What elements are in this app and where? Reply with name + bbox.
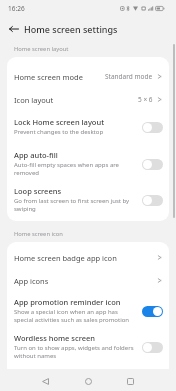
button[interactable]: Lock Home screen layout	[7, 111, 169, 144]
staticText: Auto-fill empty spaces when apps are rem…	[14, 161, 136, 177]
button[interactable]: Switch off	[142, 195, 163, 206]
staticText: Home screen layout	[14, 45, 176, 53]
button[interactable]: Icon layout	[7, 88, 169, 111]
button[interactable]: Switch off	[142, 342, 163, 353]
staticText: Prevent changes to the desktop	[14, 128, 104, 136]
staticText: Lock Home screen layout	[14, 117, 105, 127]
staticText: Home screen settings	[24, 23, 118, 35]
button[interactable]: Wordless home screen	[7, 327, 169, 366]
button[interactable]: Home screen badge app icon	[7, 246, 169, 269]
staticText: 16:26	[8, 4, 25, 13]
button[interactable]: Recent apps	[116, 372, 144, 390]
button[interactable]: App promotion reminder icon	[7, 292, 169, 327]
staticText: Icon layout	[14, 95, 54, 105]
staticText: 5 × 6	[138, 95, 153, 104]
staticText: Turn on to show apps, widgets and folder…	[14, 344, 136, 360]
staticText: Home screen icon	[14, 230, 176, 238]
button[interactable]: Switch off	[142, 159, 163, 170]
button[interactable]: Switch off	[142, 122, 163, 133]
button[interactable]: App icons	[7, 269, 169, 292]
staticText: App auto-fill	[14, 150, 58, 160]
staticText: Standard mode	[105, 72, 153, 81]
staticText: Wordless home screen	[14, 333, 96, 343]
button[interactable]: Back	[31, 372, 60, 390]
staticText: Go from last screen to first screen just…	[14, 197, 136, 213]
button[interactable]: Loop screens	[7, 180, 169, 219]
staticText: App icons	[14, 276, 49, 286]
staticText: Loop screens	[14, 186, 62, 196]
button[interactable]: Home	[74, 372, 102, 390]
button[interactable]: Back	[6, 21, 22, 37]
staticText: Home screen badge app icon	[14, 253, 117, 263]
button[interactable]: App auto-fill	[7, 144, 169, 180]
staticText: Show a special icon when an app has spec…	[14, 308, 136, 324]
staticText: App promotion reminder icon	[14, 297, 121, 307]
button[interactable]: Switch on	[142, 306, 163, 317]
staticText: Home screen mode	[14, 72, 83, 82]
button[interactable]: Home screen mode	[7, 65, 169, 88]
